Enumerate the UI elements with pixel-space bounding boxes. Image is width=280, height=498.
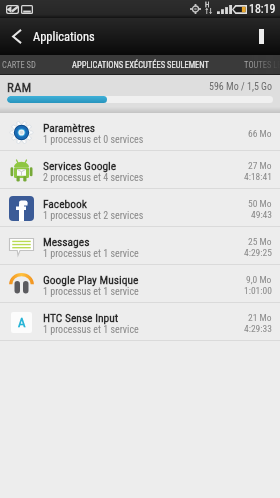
staticText: 50 Mo [248, 198, 272, 209]
staticText: 1 processus et 1 service [43, 248, 139, 260]
button[interactable]: Facebook [0, 189, 280, 227]
staticText: 2 processus et 4 services [43, 172, 144, 184]
staticText: Services Google [43, 159, 117, 172]
staticText: APPLICATIONS EXÉCUTÉES SEULEMENT [72, 60, 209, 70]
button[interactable]: A [0, 303, 280, 341]
staticText: CARTE SD [2, 60, 36, 70]
staticText: 1 processus et 0 services [43, 134, 144, 146]
staticText: Applications [33, 29, 95, 44]
staticText: Paramètres [43, 121, 96, 134]
staticText: 1 processus et 1 service [43, 324, 139, 336]
staticText: 1 processus et 2 services [43, 210, 144, 222]
staticText: 1:01:00 [244, 285, 272, 296]
button[interactable]: Messages [0, 227, 280, 265]
staticText: A [18, 315, 26, 330]
button[interactable]: Google Play Musique [0, 265, 280, 303]
button[interactable]: More options [243, 18, 280, 55]
staticText: Google Play Musique [43, 273, 139, 286]
staticText: H [205, 1, 210, 9]
staticText: 9,0 Mo [246, 274, 272, 285]
staticText: TOUTES LES APPLICATIONS [244, 60, 280, 70]
staticText: 66 Mo [248, 128, 272, 139]
staticText: 21 Mo [248, 312, 272, 323]
staticText: 49:43 [251, 209, 272, 220]
staticText: 4:18:41 [244, 171, 272, 182]
button[interactable]: Paramètres [0, 113, 280, 151]
staticText: Messages [43, 235, 90, 248]
staticText: 25 Mo [248, 236, 272, 247]
staticText: 18:19 [249, 2, 276, 16]
button[interactable]: APPLICATIONS EXÉCUTÉES SEULEMENT [56, 55, 224, 75]
staticText: 4:29:33 [244, 323, 272, 334]
button[interactable]: Back [0, 18, 33, 55]
button[interactable]: Services Google [0, 151, 280, 189]
staticText: RAM [7, 80, 32, 95]
staticText: 1 processus et 1 service [43, 286, 139, 298]
staticText: HTC Sense Input [43, 311, 119, 324]
staticText: 27 Mo [248, 160, 272, 171]
staticText: Facebook [43, 197, 87, 210]
staticText: 4:29:25 [244, 247, 272, 258]
staticText: 596 Mo / 1,5 Go [209, 81, 273, 93]
button[interactable]: TOUTES LES APPLICATIONS [216, 55, 280, 75]
button[interactable]: CARTE SD [0, 55, 56, 75]
